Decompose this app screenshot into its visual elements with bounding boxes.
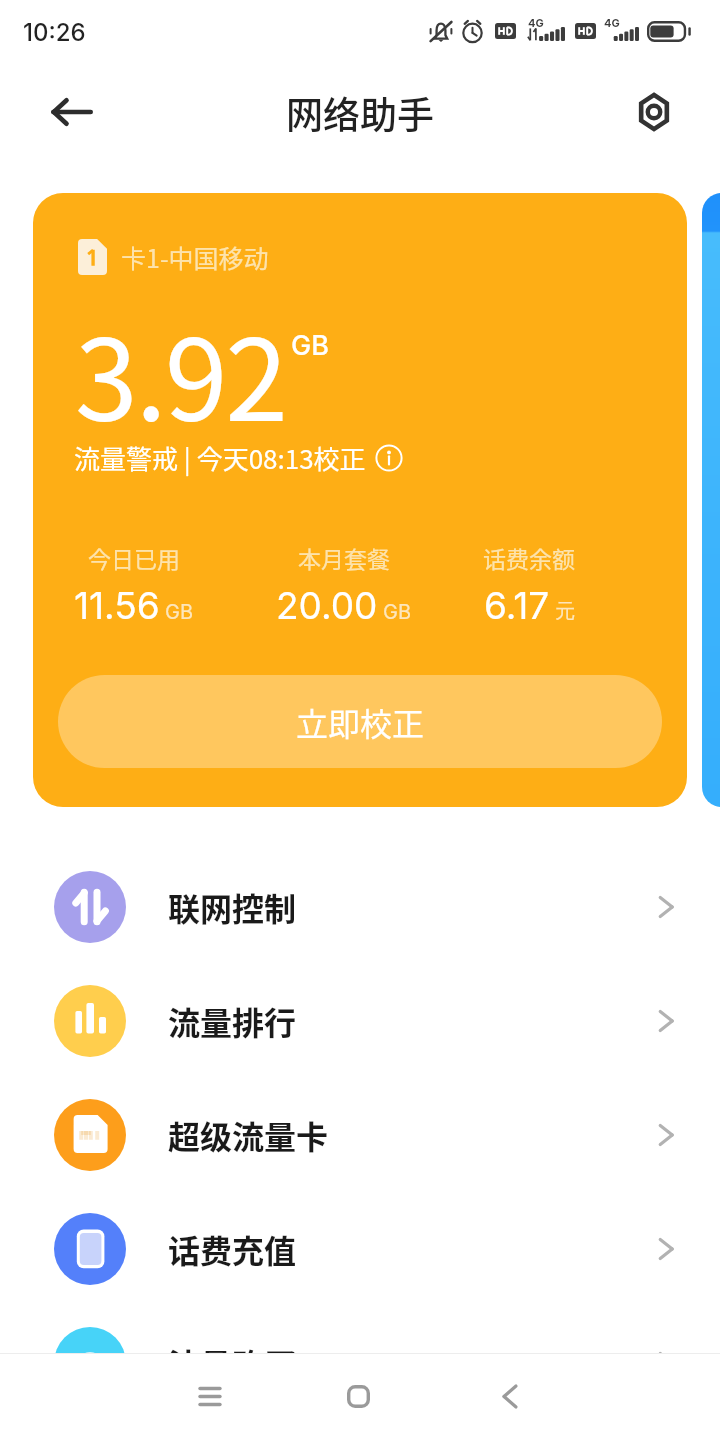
button[interactable] [702,193,720,807]
staticText: 话费余额 [483,541,575,574]
button[interactable]: 联网控制 [0,850,720,964]
staticText: 本月套餐 [298,541,390,574]
staticText: 11.56 [74,583,160,628]
staticText: 流量警戒 | 今天08:13校正 [74,439,366,477]
staticText: 话费充值 [168,1226,720,1272]
button[interactable]: 超级流量卡 [0,1078,720,1192]
button[interactable]: Back [40,80,104,144]
button[interactable]: Back [474,1360,546,1432]
staticText: 联网控制 [168,884,720,930]
staticText: 流量排行 [168,998,720,1044]
staticText: 10:26 [23,18,86,47]
button[interactable]: 流量排行 [0,964,720,1078]
staticText: 流量购买 [168,1340,720,1386]
staticText: 卡1-中国移动 [121,239,269,275]
staticText: 网络助手 [286,86,434,140]
button[interactable]: 卡1-中国移动 [33,193,687,807]
staticText: 元 [555,599,575,624]
staticText: 今日已用 [88,541,180,574]
staticText: 超级流量卡 [168,1112,720,1158]
staticText: GB [291,329,329,362]
staticText: 立即校正 [296,699,425,745]
button[interactable]: 话费充值 [0,1192,720,1306]
staticText: 3.92 [75,290,286,454]
staticText: GB [165,600,194,624]
staticText: 4G [528,16,544,29]
button[interactable]: 立即校正 [58,675,662,768]
staticText: 4G [604,16,620,29]
staticText: GB [383,600,412,624]
button[interactable]: Settings [622,80,686,144]
button[interactable]: Home [322,1360,394,1432]
staticText: 20.00 [276,583,378,628]
staticText: 6.17 [484,583,550,628]
button[interactable]: Recent apps [174,1360,246,1432]
button[interactable]: 流量购买 [0,1306,720,1420]
